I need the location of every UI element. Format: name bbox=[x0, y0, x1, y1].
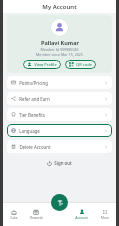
staticText: Delete Account bbox=[19, 144, 51, 150]
button[interactable]: Refer and Earn bbox=[7, 92, 112, 105]
staticText: Sign out bbox=[54, 160, 72, 166]
staticText: View Profile bbox=[34, 62, 57, 67]
button[interactable]: Sign out bbox=[3, 158, 116, 168]
staticText: Language bbox=[19, 128, 40, 134]
staticText: Points/Pricing bbox=[19, 80, 48, 86]
staticText: My Account bbox=[42, 3, 77, 11]
button[interactable]: View Profile bbox=[23, 60, 61, 69]
staticText: Cake bbox=[10, 216, 18, 220]
staticText: Refer and Earn bbox=[19, 96, 50, 102]
button[interactable]: Account bbox=[70, 202, 93, 226]
button[interactable]: Delete Account bbox=[7, 140, 112, 153]
staticText: Member Id 909980043 bbox=[40, 47, 79, 52]
button[interactable]: More bbox=[93, 202, 116, 226]
staticText: Pallavi Kumar bbox=[41, 39, 79, 46]
button[interactable]: Scan bbox=[51, 194, 68, 211]
staticText: Member since Mar 15, 2025 bbox=[36, 52, 83, 57]
button[interactable]: Tier Benefits bbox=[7, 108, 112, 121]
staticText: QR code bbox=[76, 62, 92, 67]
staticText: More bbox=[101, 216, 109, 220]
button[interactable]: Cake bbox=[3, 202, 25, 226]
button[interactable]: Points/Pricing bbox=[7, 76, 112, 89]
staticText: Tier Benefits bbox=[19, 112, 45, 118]
staticText: Rewards bbox=[30, 216, 43, 220]
button[interactable]: Rewards bbox=[25, 202, 47, 226]
button[interactable]: QR code bbox=[65, 60, 96, 69]
button[interactable]: Language bbox=[7, 124, 112, 137]
staticText: Account bbox=[75, 216, 88, 220]
